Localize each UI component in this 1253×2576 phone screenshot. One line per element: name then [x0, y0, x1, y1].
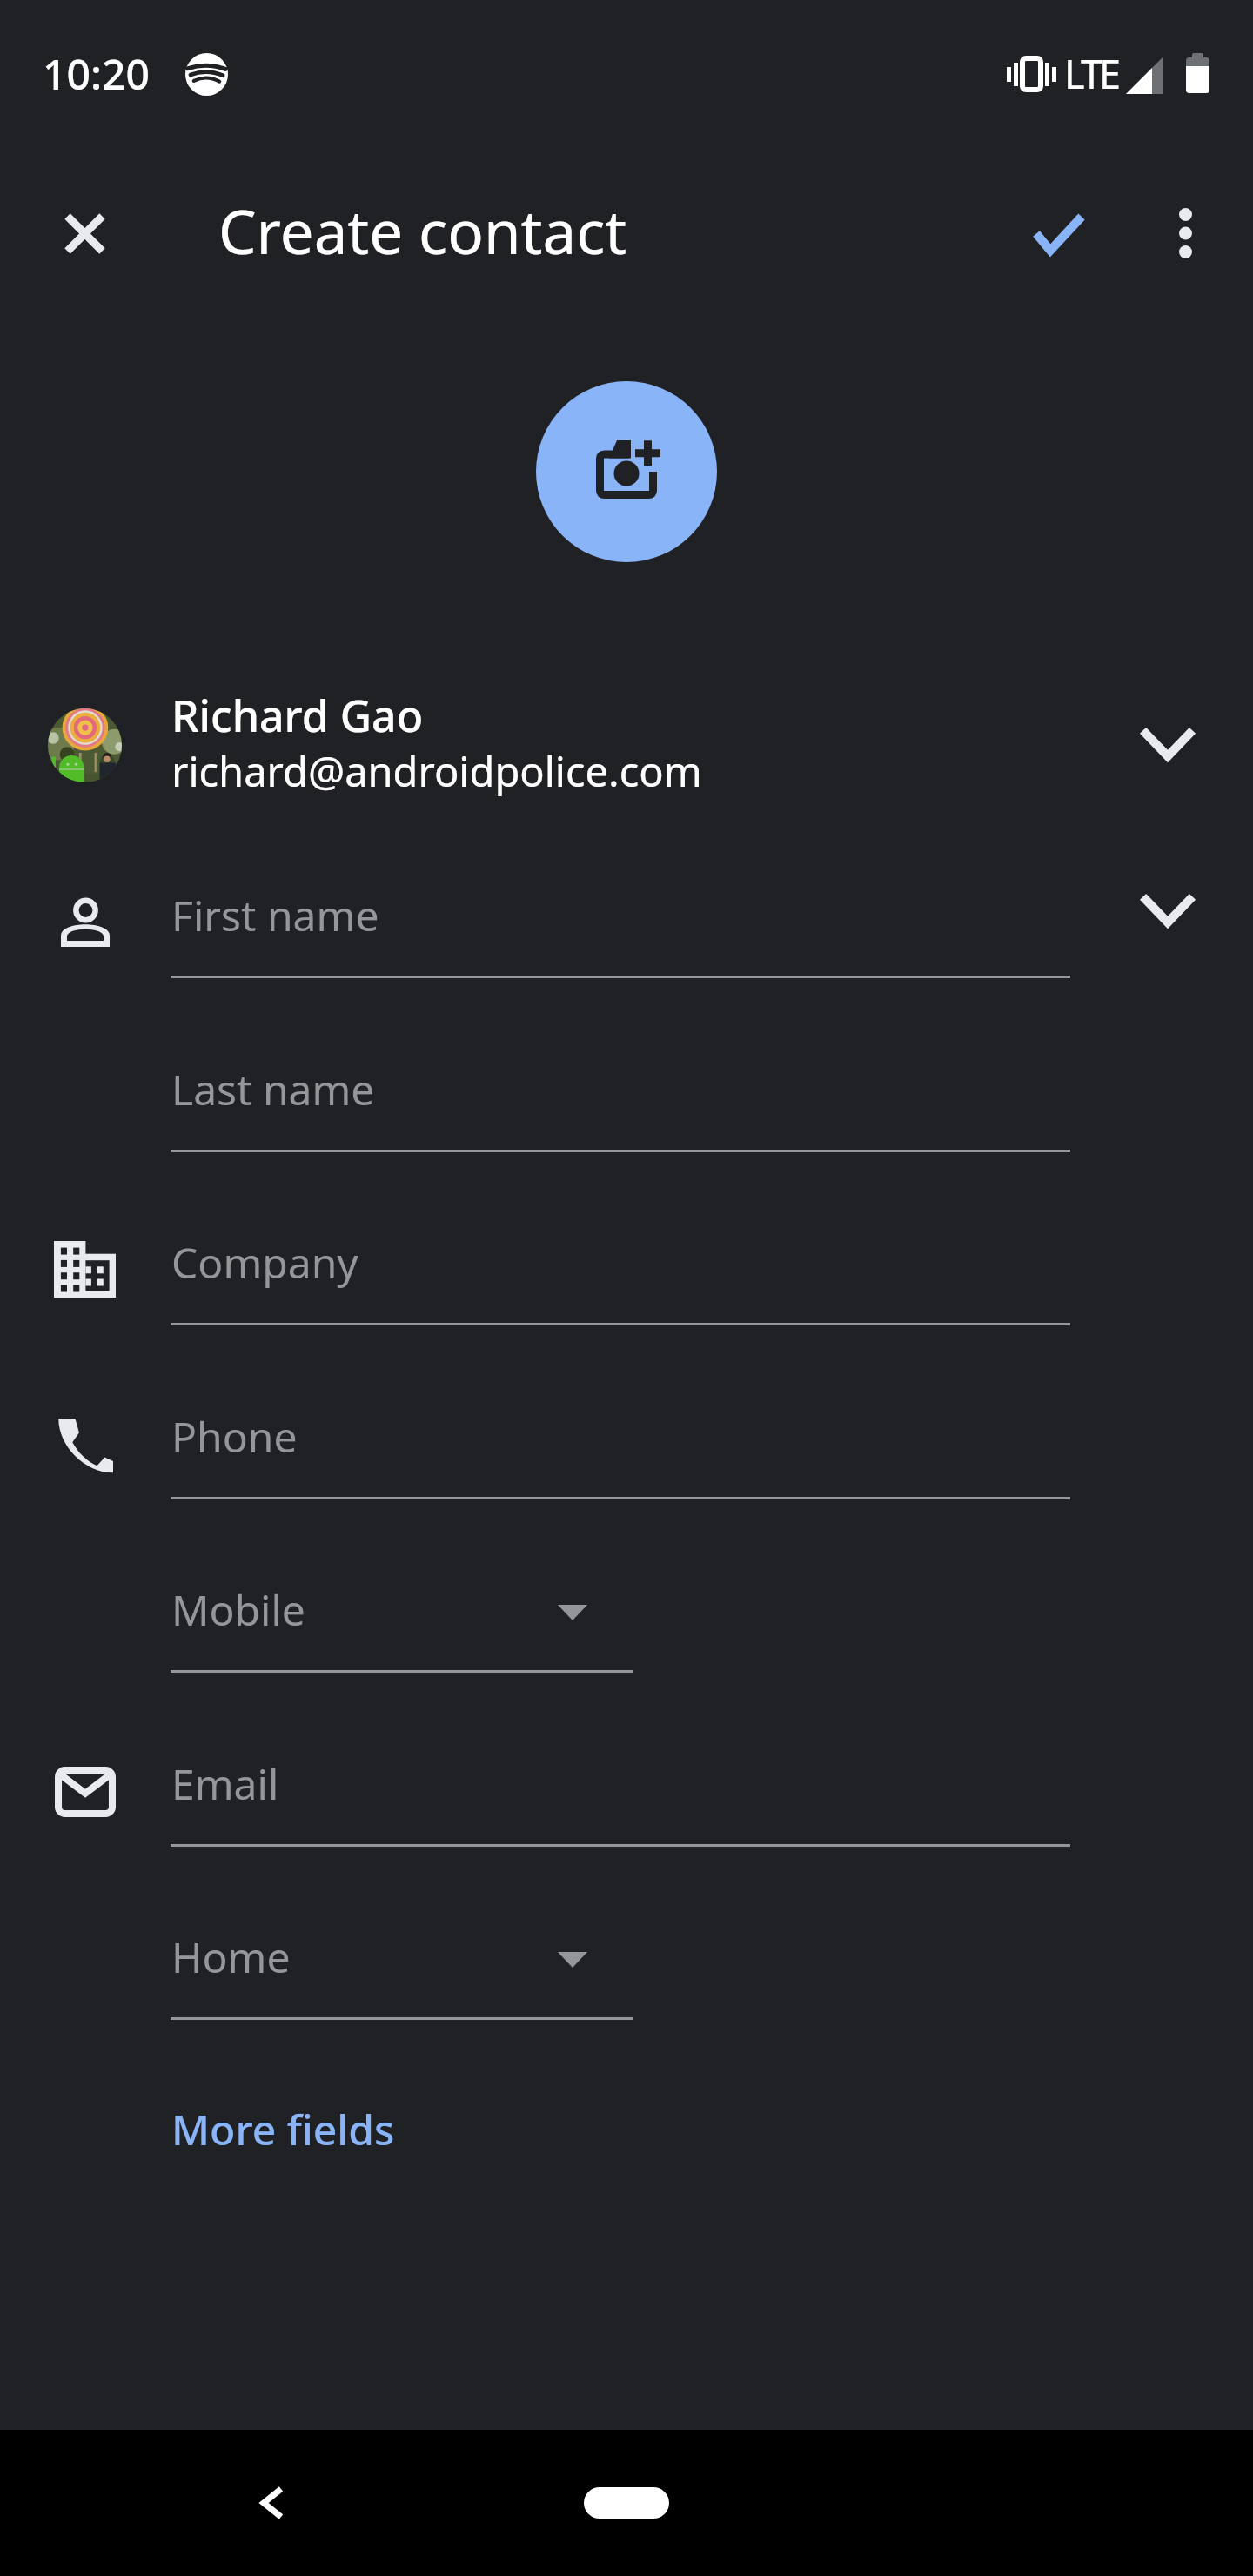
staticText: Richard Gao — [171, 686, 424, 745]
button[interactable]: Richard Gao — [0, 658, 1253, 823]
button[interactable] — [0, 1214, 1253, 1375]
button[interactable]: Close — [36, 184, 133, 282]
button[interactable]: Change account — [1119, 696, 1216, 794]
button[interactable]: Home — [584, 2487, 669, 2519]
staticText: richard@androidpolice.com — [171, 743, 702, 799]
staticText: Mobile — [171, 1581, 305, 1638]
staticText: Company — [171, 1234, 358, 1291]
button[interactable] — [0, 1735, 1253, 1896]
button[interactable] — [0, 1041, 1253, 1202]
staticText: Last name — [171, 1061, 375, 1117]
button[interactable]: Back — [227, 2459, 314, 2546]
staticText: 10:20 — [43, 45, 150, 102]
staticText: Email — [171, 1755, 279, 1812]
staticText: Create contact — [218, 190, 627, 272]
staticText: Phone — [171, 1408, 298, 1465]
button[interactable]: Save contact — [1009, 184, 1107, 282]
button[interactable]: Expand name fields — [1119, 862, 1216, 960]
staticText: First name — [171, 887, 379, 943]
staticText: LTE — [1064, 47, 1118, 100]
button[interactable]: More options — [1136, 184, 1234, 282]
button[interactable]: Add contact photo — [536, 381, 717, 562]
button[interactable] — [0, 1388, 1253, 1549]
staticText: More fields — [171, 2101, 395, 2157]
button[interactable] — [0, 1909, 1253, 2070]
button[interactable]: More fields — [168, 2101, 392, 2157]
button[interactable] — [0, 867, 1253, 1028]
staticText: Home — [171, 1929, 291, 1985]
button[interactable] — [0, 1561, 1253, 1722]
